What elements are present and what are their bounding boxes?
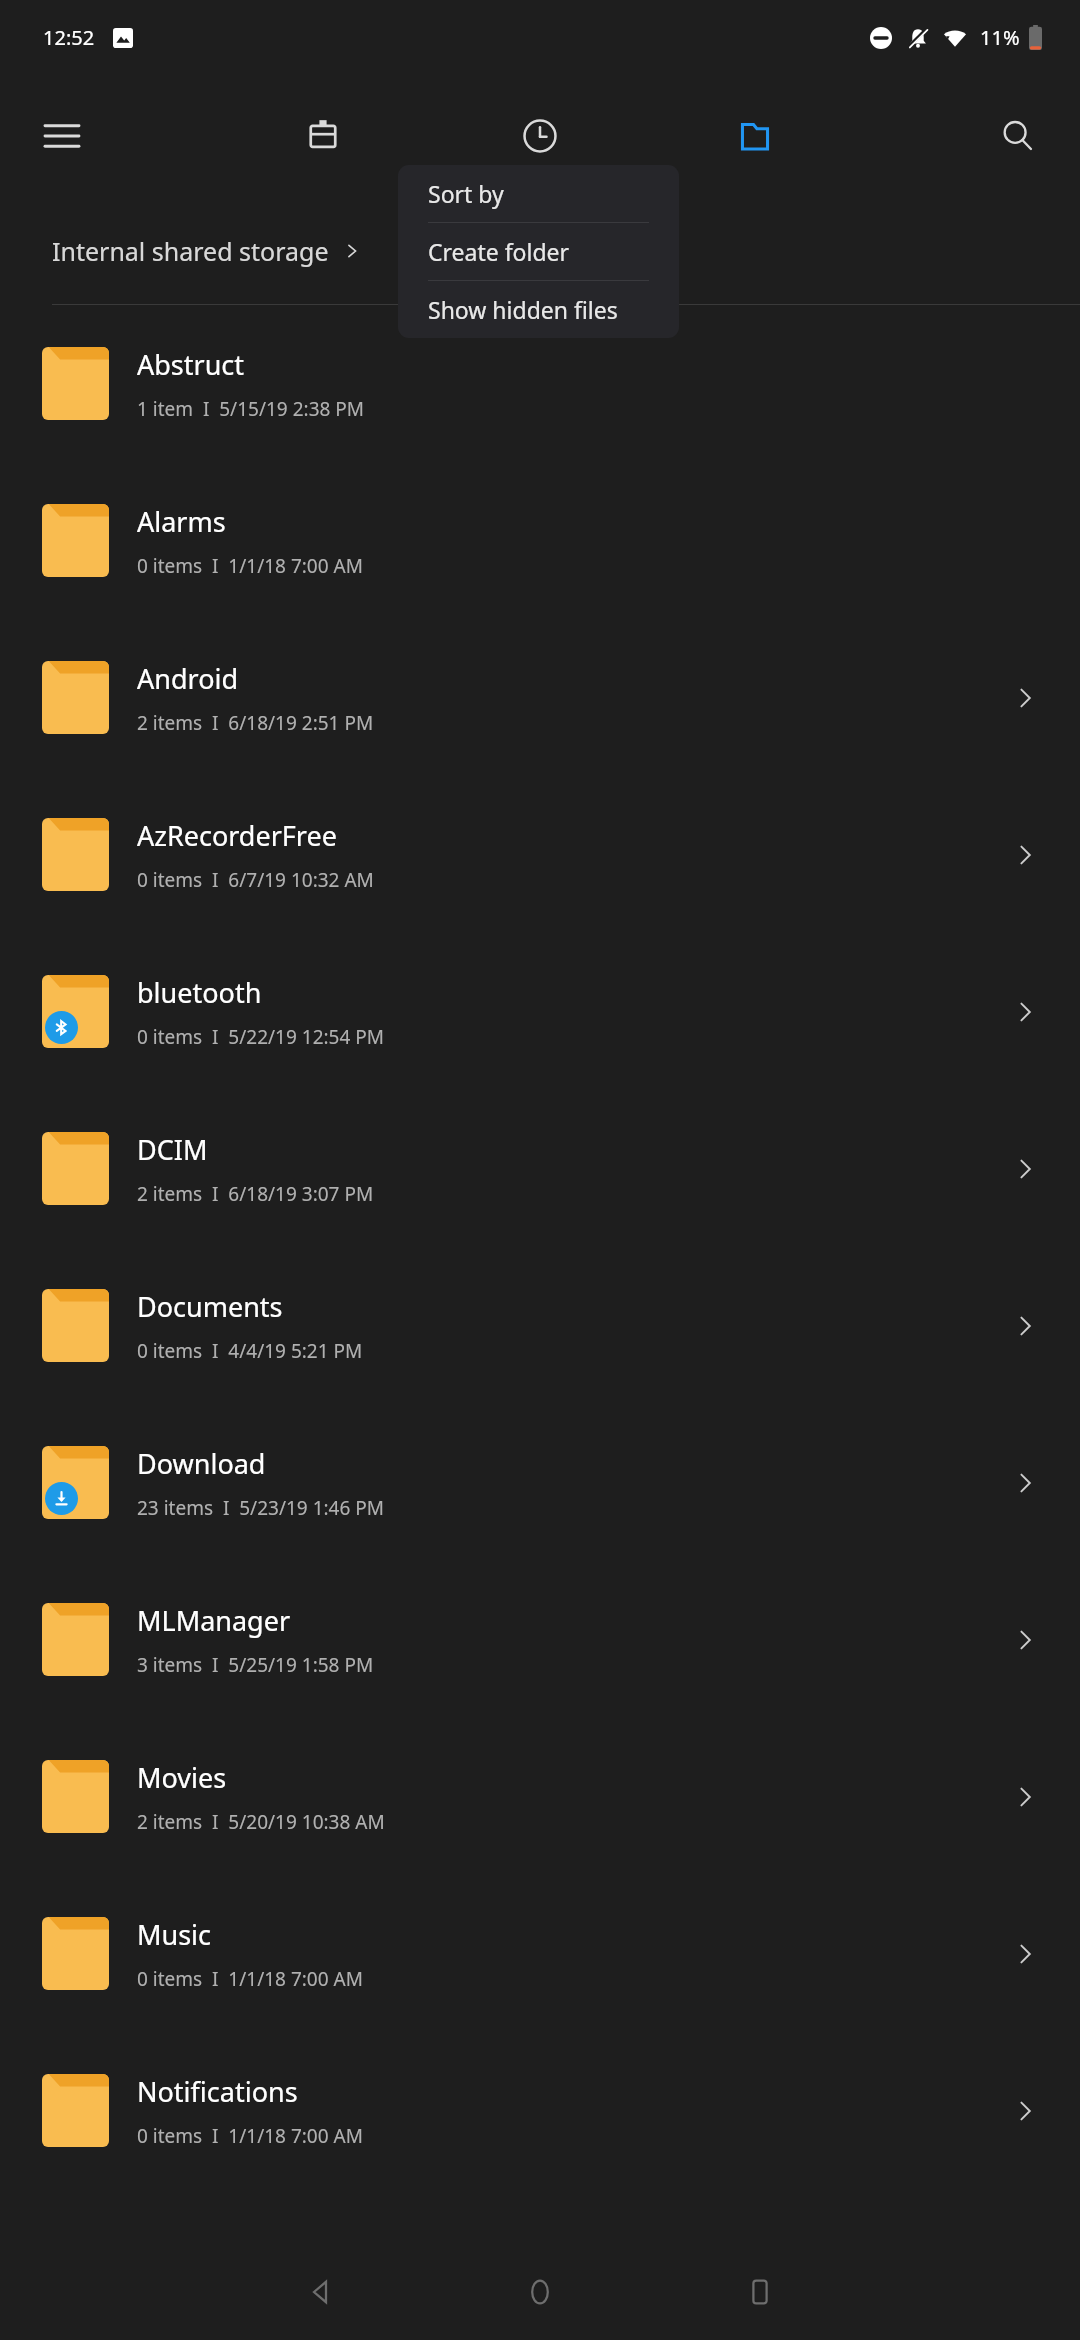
button[interactable]: Recent <box>500 96 580 176</box>
staticText: 0 items I 6/7/19 10:32 AM <box>137 867 374 893</box>
staticText: AzRecorderFree <box>137 817 337 854</box>
staticText: 1 item I 5/15/19 2:38 PM <box>137 396 365 422</box>
button[interactable]: Alarms <box>0 462 1080 619</box>
button[interactable]: Download <box>0 1404 1080 1561</box>
button[interactable]: Documents <box>0 1247 1080 1404</box>
staticText: 2 items I 6/18/19 3:07 PM <box>137 1181 374 1207</box>
button[interactable]: Abstruct <box>0 305 1080 462</box>
staticText: Create folder <box>428 236 570 267</box>
button[interactable]: Files <box>715 96 795 176</box>
staticText: Sort by <box>428 178 504 209</box>
button[interactable]: Recents <box>650 2244 870 2340</box>
button[interactable]: Create folder <box>398 223 679 280</box>
staticText: 0 items I 1/1/18 7:00 AM <box>137 553 363 579</box>
staticText: 2 items I 6/18/19 2:51 PM <box>137 710 374 736</box>
button[interactable]: Clean storage <box>283 96 363 176</box>
staticText: Abstruct <box>137 346 245 383</box>
button[interactable]: Internal shared storage <box>0 198 1080 304</box>
staticText: Android <box>137 660 239 697</box>
staticText: Notifications <box>137 2073 298 2110</box>
button[interactable]: Android <box>0 619 1080 776</box>
staticText: Show hidden files <box>428 294 618 325</box>
staticText: Download <box>137 1445 266 1482</box>
staticText: 11% <box>980 24 1020 51</box>
staticText: Alarms <box>137 503 226 540</box>
button[interactable]: Back <box>210 2244 430 2340</box>
staticText: 3 items I 5/25/19 1:58 PM <box>137 1652 374 1678</box>
button[interactable]: MLManager <box>0 1561 1080 1718</box>
staticText: Movies <box>137 1759 227 1796</box>
staticText: 0 items I 1/1/18 7:00 AM <box>137 1966 363 1992</box>
button[interactable]: Show hidden files <box>398 281 679 338</box>
staticText: bluetooth <box>137 974 262 1011</box>
button[interactable]: bluetooth <box>0 933 1080 1090</box>
staticText: 2 items I 5/20/19 10:38 AM <box>137 1809 385 1835</box>
button[interactable]: Notifications <box>0 2032 1080 2189</box>
staticText: DCIM <box>137 1131 208 1168</box>
button[interactable]: Movies <box>0 1718 1080 1875</box>
staticText: MLManager <box>137 1602 291 1639</box>
staticText: 0 items I 5/22/19 12:54 PM <box>137 1024 385 1050</box>
staticText: Music <box>137 1916 212 1953</box>
button[interactable]: AzRecorderFree <box>0 776 1080 933</box>
staticText: 12:52 <box>43 24 95 51</box>
button[interactable]: Search <box>978 96 1058 176</box>
staticText: 23 items I 5/23/19 1:46 PM <box>137 1495 385 1521</box>
staticText: Internal shared storage <box>52 234 329 268</box>
staticText: Documents <box>137 1288 283 1325</box>
button[interactable]: Music <box>0 1875 1080 2032</box>
button[interactable]: Sort by <box>398 165 679 222</box>
button[interactable]: Home <box>430 2244 650 2340</box>
staticText: 0 items I 4/4/19 5:21 PM <box>137 1338 363 1364</box>
staticText: 0 items I 1/1/18 7:00 AM <box>137 2123 363 2149</box>
button[interactable]: Menu <box>22 96 102 176</box>
button[interactable]: DCIM <box>0 1090 1080 1247</box>
